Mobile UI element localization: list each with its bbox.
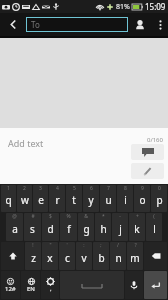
- staticText: m: [130, 251, 140, 265]
- button[interactable]: Add contact: [128, 13, 152, 36]
- staticText: ': [66, 242, 68, 249]
- staticText: w: [21, 193, 29, 207]
- staticText: 3: [39, 185, 42, 192]
- staticText: l: [153, 222, 156, 236]
- staticText: r: [55, 193, 60, 207]
- staticText: n: [115, 251, 122, 265]
- button[interactable]: (: [146, 213, 162, 241]
- staticText: k: [134, 222, 140, 236]
- button[interactable]: 6: [83, 185, 99, 212]
- staticText: x: [47, 251, 53, 265]
- staticText: t: [72, 193, 76, 207]
- staticText: 0: [158, 185, 161, 192]
- staticText: v: [81, 251, 87, 265]
- staticText: 1: [7, 185, 10, 192]
- staticText: j: [119, 222, 122, 236]
- button[interactable]: Enter: [144, 271, 167, 299]
- button[interactable]: Backspace: [144, 242, 167, 270]
- button[interactable]: !: [25, 242, 41, 270]
- staticText: &: [84, 213, 88, 220]
- button[interactable]: To: [26, 17, 128, 32]
- staticText: (: [153, 213, 155, 220]
- staticText: $: [49, 213, 52, 220]
- button[interactable]: Back: [0, 13, 26, 36]
- button[interactable]: ;: [93, 242, 109, 270]
- staticText: a: [12, 222, 18, 236]
- button[interactable]: @: [6, 213, 23, 241]
- staticText: 15:09: [145, 1, 166, 12]
- button[interactable]: Shift: [1, 242, 24, 270]
- button[interactable]: More options: [152, 13, 168, 36]
- button[interactable]: %: [60, 213, 77, 241]
- staticText: ?: [134, 242, 137, 249]
- button[interactable]: 5: [66, 185, 82, 212]
- staticText: o: [139, 193, 146, 207]
- button[interactable]: Send message: [131, 144, 164, 160]
- staticText: 7: [107, 185, 110, 192]
- staticText: y: [88, 193, 94, 207]
- staticText: %: [66, 213, 71, 220]
- button[interactable]: 8: [117, 185, 133, 212]
- button[interactable]: 9: [134, 185, 150, 212]
- staticText: ;: [100, 242, 102, 249]
- staticText: ": [49, 242, 52, 249]
- button[interactable]: 7: [100, 185, 116, 212]
- staticText: z: [31, 251, 36, 265]
- button[interactable]: $: [42, 213, 59, 241]
- staticText: h: [100, 222, 107, 236]
- staticText: 5: [73, 185, 76, 192]
- staticText: 0/160: [147, 136, 163, 144]
- staticText: To: [31, 19, 40, 30]
- button[interactable]: /: [110, 242, 126, 270]
- button[interactable]: #: [24, 213, 41, 241]
- staticText: u: [105, 193, 112, 207]
- button[interactable]: ': [59, 242, 75, 270]
- staticText: 9: [141, 185, 144, 192]
- staticText: /: [117, 242, 119, 249]
- button[interactable]: Language: [21, 271, 40, 299]
- staticText: ,: [50, 285, 52, 293]
- button[interactable]: *: [95, 213, 111, 241]
- staticText: 81%: [116, 2, 130, 12]
- staticText: c: [65, 251, 70, 265]
- button[interactable]: Symbols: [1, 271, 20, 299]
- staticText: #: [31, 213, 35, 220]
- button[interactable]: 3: [33, 185, 48, 212]
- staticText: EN: [27, 285, 35, 293]
- button[interactable]: -: [112, 213, 128, 241]
- button[interactable]: Attach: [131, 163, 164, 179]
- button[interactable]: &: [78, 213, 94, 241]
- staticText: e: [38, 193, 44, 207]
- button[interactable]: 1: [1, 185, 16, 212]
- button[interactable]: ?: [127, 242, 143, 270]
- staticText: @: [12, 213, 17, 220]
- staticText: *: [102, 213, 105, 220]
- staticText: !: [32, 242, 34, 249]
- staticText: g: [83, 222, 90, 236]
- staticText: f: [67, 222, 71, 236]
- button[interactable]: 0: [151, 185, 167, 212]
- button[interactable]: :: [76, 242, 92, 270]
- button[interactable]: Voice input: [125, 271, 143, 299]
- staticText: 12#: [5, 285, 16, 293]
- staticText: -: [119, 213, 121, 220]
- button[interactable]: 4: [49, 185, 65, 212]
- staticText: q: [5, 193, 12, 207]
- staticText: 6: [90, 185, 93, 192]
- button[interactable]: ": [42, 242, 58, 270]
- staticText: 2: [23, 185, 26, 192]
- button[interactable]: +: [129, 213, 145, 241]
- staticText: Add text: [8, 137, 44, 149]
- staticText: s: [30, 222, 35, 236]
- button[interactable]: 2: [17, 185, 32, 212]
- staticText: p: [156, 193, 163, 207]
- staticText: i: [124, 193, 127, 207]
- staticText: b: [98, 251, 105, 265]
- button[interactable]: Settings: [41, 271, 59, 299]
- staticText: 4: [56, 185, 59, 192]
- button[interactable]: Space: [60, 271, 124, 299]
- staticText: :: [83, 242, 85, 249]
- staticText: d: [47, 222, 54, 236]
- staticText: 8: [124, 185, 127, 192]
- staticText: +: [136, 213, 139, 220]
